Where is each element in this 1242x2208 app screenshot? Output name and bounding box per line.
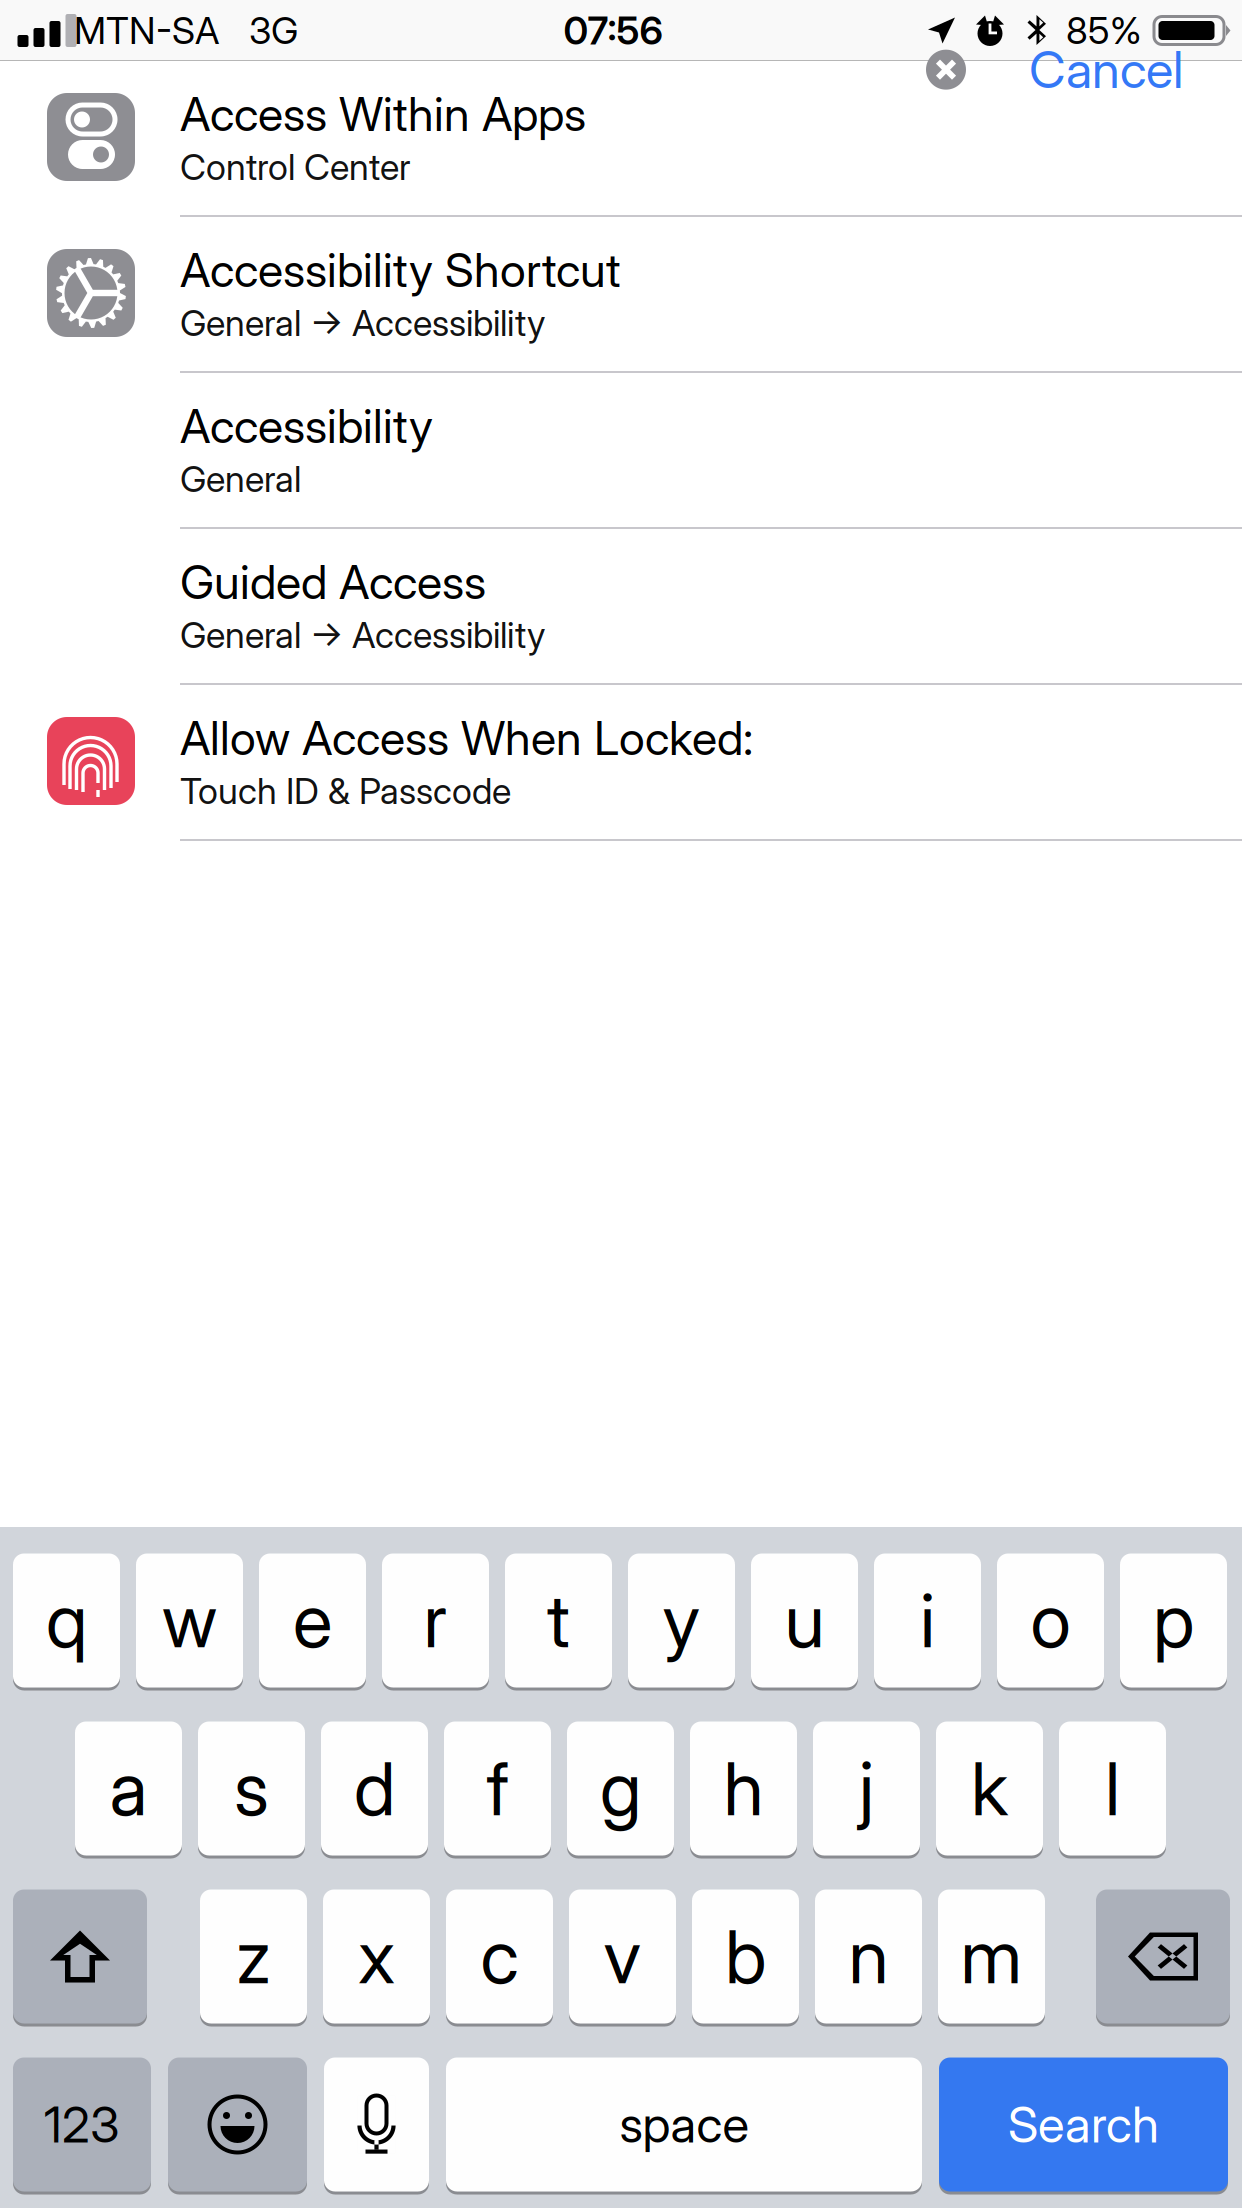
staticText: d [354, 1744, 395, 1833]
button[interactable]: n [815, 1888, 922, 2025]
button[interactable]: e [259, 1552, 366, 1689]
staticText: g [600, 1744, 641, 1833]
button[interactable]: Emoji [168, 2056, 307, 2193]
button[interactable]: l [1059, 1720, 1166, 1857]
staticText: v [603, 1912, 641, 2001]
staticText: General → Accessibility [180, 613, 545, 657]
button[interactable]: v [569, 1888, 676, 2025]
button[interactable]: q [13, 1552, 120, 1689]
button[interactable]: s [198, 1720, 305, 1857]
staticText: h [723, 1744, 763, 1833]
button[interactable]: p [1120, 1552, 1227, 1689]
button[interactable]: Cancel [966, 31, 1183, 108]
staticText: y [662, 1576, 700, 1665]
button[interactable]: b [692, 1888, 799, 2025]
staticText: 123 [44, 2095, 120, 2154]
staticText: 07:56 [563, 7, 662, 54]
button[interactable]: y [628, 1552, 735, 1689]
staticText: o [1030, 1576, 1070, 1665]
staticText: s [234, 1744, 269, 1833]
staticText: c [480, 1912, 518, 2001]
staticText: x [358, 1912, 395, 2001]
button[interactable]: r [382, 1552, 489, 1689]
staticText: General [180, 457, 301, 501]
button[interactable]: o [997, 1552, 1104, 1689]
staticText: space [619, 2095, 748, 2154]
staticText: Allow Access When Locked: [180, 710, 753, 766]
staticText: i [920, 1576, 935, 1665]
button[interactable]: w [136, 1552, 243, 1689]
staticText: j [859, 1744, 874, 1833]
staticText: Accessibility Shortcut [180, 242, 621, 298]
staticText: z [236, 1912, 271, 2001]
staticText: General → Accessibility [180, 301, 545, 345]
staticText: Accessibility [180, 398, 433, 454]
staticText: f [486, 1744, 508, 1833]
staticText: Control Center [180, 145, 411, 189]
staticText: Access Within Apps [180, 86, 586, 142]
staticText: a [109, 1744, 147, 1833]
button[interactable]: k [936, 1720, 1043, 1857]
staticText: w [162, 1576, 217, 1665]
staticText: n [848, 1912, 888, 2001]
staticText: l [1105, 1744, 1120, 1833]
button[interactable]: space [446, 2056, 922, 2193]
staticText: 3G [249, 8, 298, 53]
button[interactable]: h [690, 1720, 797, 1857]
staticText: t [547, 1576, 570, 1665]
button[interactable]: f [444, 1720, 551, 1857]
button[interactable]: u [751, 1552, 858, 1689]
staticText: q [46, 1576, 87, 1665]
staticText: Guided Access [180, 554, 486, 610]
staticText: e [293, 1576, 332, 1665]
button[interactable]: Delete [1096, 1888, 1230, 2025]
button[interactable]: t [505, 1552, 612, 1689]
button[interactable]: Search [939, 2056, 1228, 2193]
button[interactable]: Guided Access [0, 529, 1242, 685]
button[interactable]: Accessibility Shortcut [0, 217, 1242, 373]
staticText: k [971, 1744, 1008, 1833]
button[interactable]: Shift [13, 1888, 147, 2025]
staticText: MTN-SA [74, 8, 219, 53]
button[interactable]: i [874, 1552, 981, 1689]
button[interactable]: 123 [13, 2056, 151, 2193]
button[interactable]: z [200, 1888, 307, 2025]
button[interactable]: a [75, 1720, 182, 1857]
staticText: m [960, 1912, 1022, 2001]
staticText: b [725, 1912, 766, 2001]
button[interactable]: c [446, 1888, 553, 2025]
staticText: Cancel [1029, 39, 1183, 100]
button[interactable]: j [813, 1720, 920, 1857]
staticText: Search [1008, 2095, 1159, 2154]
staticText: u [784, 1576, 824, 1665]
button[interactable]: d [321, 1720, 428, 1857]
staticText: Touch ID & Passcode [180, 769, 511, 813]
button[interactable]: g [567, 1720, 674, 1857]
staticText: 85% [1066, 8, 1142, 53]
button[interactable]: x [323, 1888, 430, 2025]
button[interactable]: Dictate [324, 2056, 429, 2193]
button[interactable]: Access Within Apps [0, 61, 1242, 217]
button[interactable]: m [938, 1888, 1045, 2025]
button[interactable]: Allow Access When Locked: [0, 685, 1242, 841]
staticText: r [423, 1576, 447, 1665]
button[interactable]: Accessibility [0, 373, 1242, 529]
button[interactable]: Clear text [926, 50, 966, 90]
staticText: p [1153, 1576, 1194, 1665]
